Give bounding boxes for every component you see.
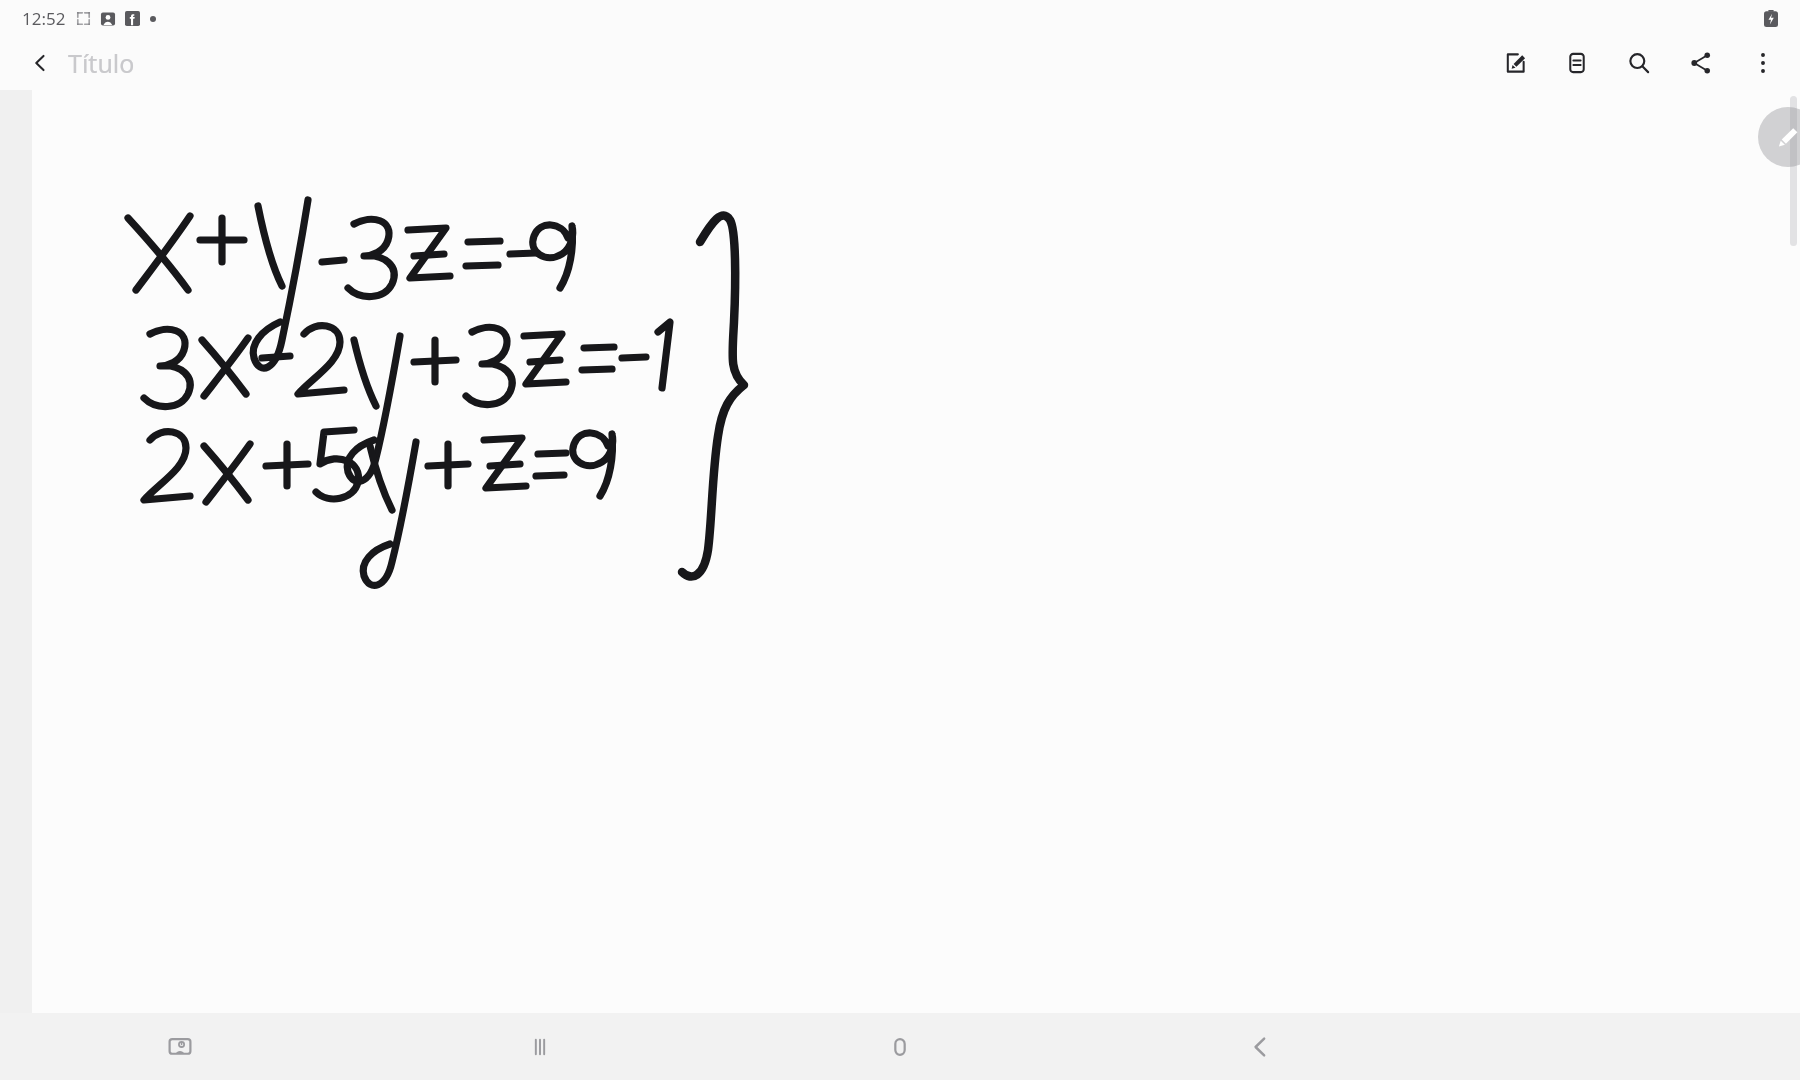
button[interactable]: Screenshot [0,1013,360,1080]
button[interactable]: Share [1680,42,1722,84]
button[interactable]: Home [720,1013,1080,1080]
button[interactable]: Back [18,41,62,85]
staticText: Título [68,46,135,80]
staticText: 12:52 [22,7,66,30]
button[interactable]: Back [1080,1013,1440,1080]
button[interactable]: Pen tools [1758,107,1800,167]
button[interactable]: Pages [1556,42,1598,84]
button[interactable]: More options [1742,42,1784,84]
button[interactable]: Edit [1494,42,1536,84]
button[interactable]: Search [1618,42,1660,84]
button[interactable]: Recents [360,1013,720,1080]
